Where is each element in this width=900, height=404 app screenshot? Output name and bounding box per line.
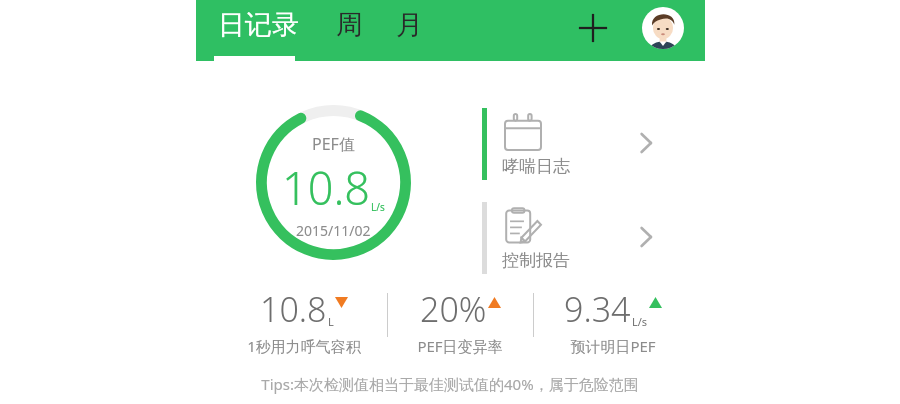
- staticText: 2015/11/02: [296, 221, 371, 240]
- staticText: L/s: [371, 200, 385, 214]
- button[interactable]: PEF值: [256, 105, 411, 260]
- staticText: 1秒用力呼气容积: [247, 336, 361, 356]
- staticText: Tips:本次检测值相当于最佳测试值的40%，属于危险范围: [261, 374, 639, 394]
- staticText: 日记录: [218, 8, 299, 42]
- button[interactable]: Add record: [571, 6, 615, 50]
- button[interactable]: Profile: [642, 7, 684, 49]
- staticText: 20%: [420, 286, 487, 332]
- staticText: 控制报告: [502, 250, 570, 271]
- staticText: 周: [336, 8, 363, 42]
- button[interactable]: 哮喘日志: [480, 106, 670, 188]
- button[interactable]: 日记录: [214, 0, 303, 61]
- staticText: PEF日变异率: [417, 336, 503, 356]
- staticText: PEF值: [312, 133, 355, 155]
- staticText: 10.8: [282, 157, 371, 218]
- button[interactable]: 9.34: [540, 286, 686, 358]
- staticText: 9.34: [564, 286, 631, 332]
- staticText: 预计明日PEF: [570, 336, 656, 356]
- button[interactable]: 20%: [392, 286, 528, 358]
- button[interactable]: 10.8: [228, 286, 380, 358]
- staticText: 哮喘日志: [502, 156, 570, 177]
- button[interactable]: 控制报告: [480, 200, 670, 282]
- button[interactable]: 周: [334, 0, 368, 61]
- staticText: 月: [396, 8, 423, 42]
- staticText: L/s: [632, 314, 648, 329]
- staticText: 10.8: [260, 286, 327, 332]
- staticText: L: [328, 314, 334, 329]
- button[interactable]: 月: [394, 0, 428, 61]
